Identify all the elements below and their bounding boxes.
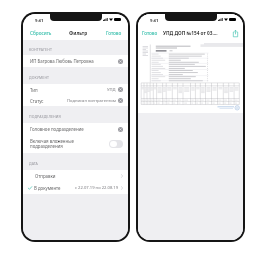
staticText: В документе: [34, 185, 61, 191]
staticText: Сбросить: [30, 30, 52, 36]
button[interactable]: Поделиться: [231, 29, 243, 38]
staticText: Подписан контрагентом: [67, 98, 116, 104]
staticText: Готово: [106, 30, 122, 36]
staticText: 9:41: [150, 18, 159, 24]
button[interactable]: Тип: [23, 84, 128, 95]
staticText: ПОДРАЗДЕЛЕНИЯ: [29, 114, 61, 119]
staticText: КОНТРАГЕНТ: [29, 47, 52, 52]
button[interactable]: Включая вложенные подразделения: [109, 140, 123, 148]
button[interactable]: Статус: [23, 95, 128, 106]
staticText: ИП Багрова Любовь Петровна: [30, 58, 94, 64]
staticText: ДАТА: [29, 161, 38, 166]
other: Очистить: [118, 59, 123, 64]
staticText: ДОКУМЕНТ: [29, 75, 50, 80]
staticText: 9:41: [35, 18, 44, 24]
button[interactable]: Готово: [104, 28, 128, 38]
staticText: Включая вложенные подразделения: [30, 138, 74, 150]
staticText: Статус: [30, 98, 44, 104]
staticText: Готово: [142, 30, 158, 36]
staticText: Фильтр: [69, 30, 88, 36]
staticText: Головное подразделение: [30, 126, 84, 132]
other: Очистить: [118, 87, 123, 92]
button[interactable]: Включая вложенные подразделения: [23, 135, 128, 153]
staticText: Отправки: [35, 173, 56, 179]
staticText: с 22.07.19 по 22.08.19: [75, 185, 119, 191]
other: Очистить: [118, 127, 123, 132]
button[interactable]: Головное подразделение: [23, 123, 128, 135]
button[interactable]: В документе: [23, 182, 128, 194]
button[interactable]: Сбросить: [23, 28, 54, 38]
other: Очистить: [118, 98, 123, 103]
staticText: УПД: [107, 87, 116, 93]
button[interactable]: Отправки: [23, 170, 128, 182]
button[interactable]: ИП Багрова Любовь Петровна: [23, 55, 128, 67]
staticText: УПД ДОП №154 от 03....: [163, 30, 218, 36]
staticText: Тип: [30, 87, 38, 93]
button[interactable]: Готово: [138, 28, 159, 38]
